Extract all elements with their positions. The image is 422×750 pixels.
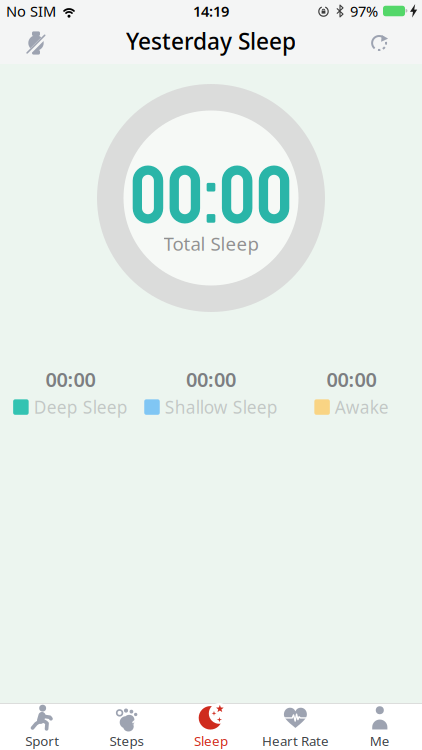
button[interactable]: Sleep <box>169 704 253 750</box>
staticText: 00:00 <box>186 366 236 393</box>
staticText: Sleep <box>194 732 228 750</box>
staticText: No SIM <box>6 1 56 21</box>
staticText: 00:00 <box>45 366 95 393</box>
staticText: Deep Sleep <box>34 396 128 419</box>
staticText: Steps <box>110 732 144 750</box>
button[interactable]: Watch connection <box>16 22 56 64</box>
button[interactable]: Sport <box>0 704 84 750</box>
staticText: 00:00 <box>327 366 377 393</box>
button[interactable]: Me <box>338 704 422 750</box>
staticText: Yesterday Sleep <box>126 26 296 56</box>
staticText: 14:19 <box>193 1 229 21</box>
staticText: Shallow Sleep <box>165 396 278 419</box>
staticText: 97% <box>350 1 378 21</box>
staticText: Me <box>370 732 390 750</box>
staticText: Sport <box>25 732 59 750</box>
button[interactable]: Refresh <box>360 22 400 64</box>
button[interactable]: Heart Rate <box>253 704 338 750</box>
staticText: Heart Rate <box>262 732 329 750</box>
staticText: Total Sleep <box>163 231 258 256</box>
button[interactable]: Steps <box>84 704 169 750</box>
staticText: Awake <box>335 396 389 419</box>
